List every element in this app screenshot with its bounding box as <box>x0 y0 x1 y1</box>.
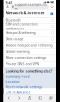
staticText: i <box>51 12 52 16</box>
staticText: Life in Advance <box>5 90 30 95</box>
staticText: support.example.com/help <box>5 16 48 20</box>
staticText: Location <box>5 80 19 84</box>
button[interactable]: Global roaming <box>3 48 56 55</box>
button[interactable]: Back <box>3 94 14 102</box>
button[interactable]: Private DNS and VPN <box>3 61 56 67</box>
button[interactable]: Bookmarks <box>35 94 45 102</box>
staticText: SIM and connection preferences <box>5 22 37 31</box>
staticText: Mobile hotspot and Tethering <box>5 43 52 48</box>
button[interactable]: Reset network settings <box>5 85 42 89</box>
staticText: Privacy and security <box>5 95 38 100</box>
button[interactable]: Privacy and security <box>5 95 38 100</box>
staticText: Global roaming <box>5 49 29 54</box>
staticText: 9:41 <box>5 1 12 5</box>
button[interactable]: More information <box>50 12 54 16</box>
button[interactable]: Share <box>24 94 35 102</box>
staticText: Airplane mode <box>5 68 28 73</box>
staticText: A <box>6 5 8 9</box>
button[interactable]: Location <box>5 80 19 84</box>
button[interactable]: Hotspot & tethering <box>3 30 56 36</box>
button[interactable]: Summary Feed <box>5 74 29 79</box>
button[interactable]: SIM and connection preferences <box>3 23 56 30</box>
button[interactable]: Mobile hotspot and Tethering <box>3 42 56 48</box>
button[interactable]: Bluetooth <box>3 17 56 23</box>
staticText: Data usage <box>5 37 23 41</box>
staticText: support.example.com <box>14 2 47 11</box>
staticText: More connection settings <box>5 56 46 60</box>
staticText: Hotspot & tethering <box>5 31 35 35</box>
button[interactable]: Tabs <box>45 94 56 102</box>
staticText: Network & internet <box>5 10 44 15</box>
staticText: Private DNS and VPN <box>5 62 39 66</box>
button[interactable]: Forward <box>14 94 24 102</box>
button[interactable]: Page settings <box>5 4 9 9</box>
staticText: Reset network settings <box>5 85 42 89</box>
button[interactable]: Life in Advance <box>5 90 30 95</box>
button[interactable]: support.example.com <box>11 4 49 9</box>
staticText: Summary Feed <box>5 74 29 79</box>
button[interactable]: Airplane mode <box>3 67 56 73</box>
staticText: Bluetooth <box>5 18 20 23</box>
staticText: Looking for something else? <box>5 69 52 73</box>
button[interactable]: Reload page <box>50 4 54 9</box>
button[interactable]: More connection settings <box>3 55 56 61</box>
button[interactable]: Data usage <box>3 36 56 42</box>
